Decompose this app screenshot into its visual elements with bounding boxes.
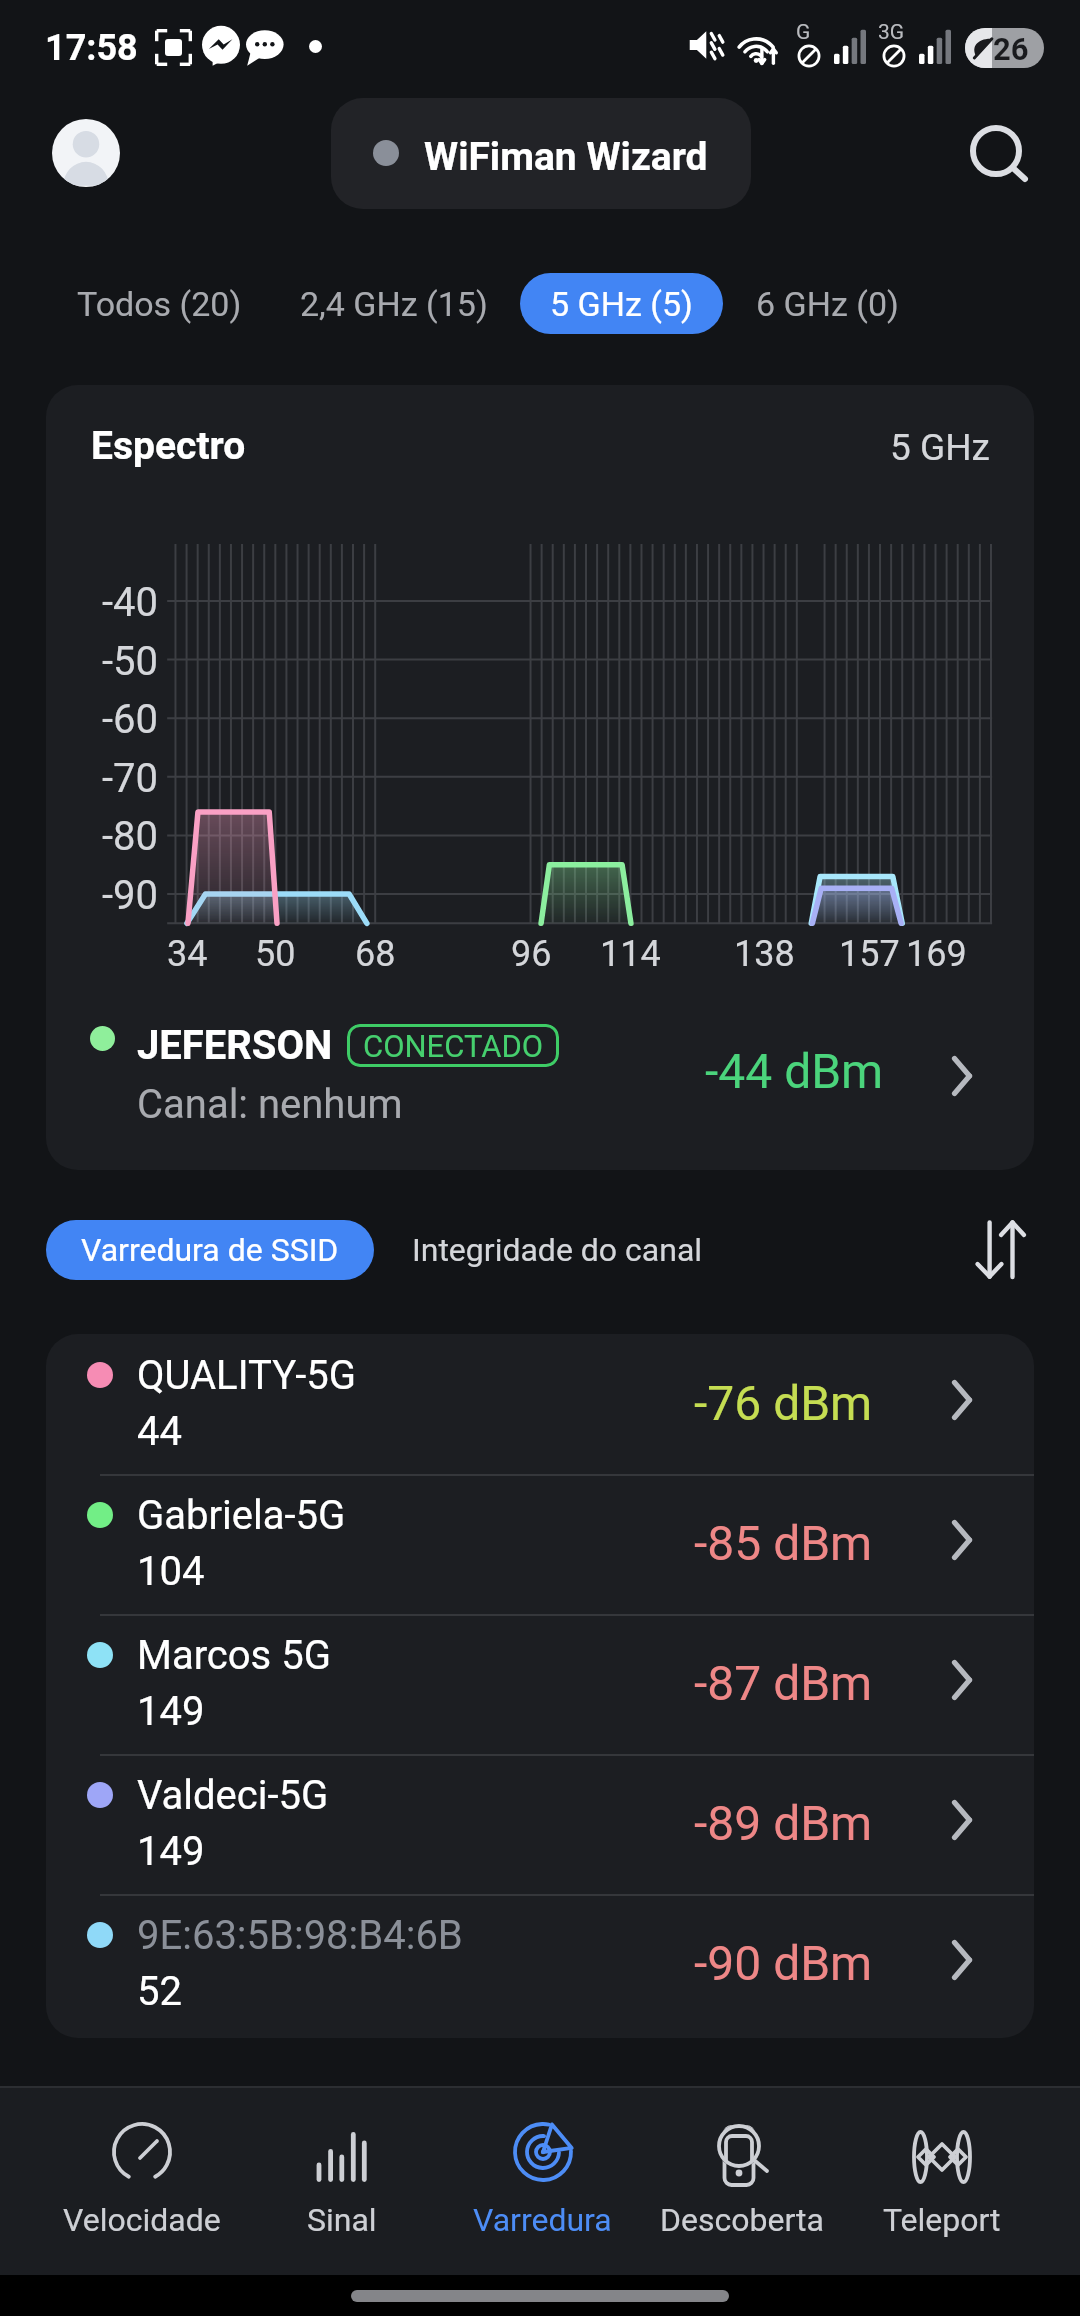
button[interactable]: 9E:63:5B:98:B4:6B <box>46 1894 1034 2034</box>
button[interactable]: Velocidade <box>42 2088 242 2275</box>
button[interactable]: Varredura <box>442 2088 642 2275</box>
staticText: 26 <box>993 31 1029 67</box>
button[interactable]: WiFiman Wizard <box>331 98 751 209</box>
staticText: Espectro <box>91 423 246 469</box>
staticText: WiFiman Wizard <box>424 134 708 180</box>
staticText: 34 <box>167 933 208 975</box>
staticText: 157 <box>839 933 900 975</box>
button[interactable]: Sort order <box>962 1212 1042 1274</box>
staticText: Teleport <box>883 2201 1001 2239</box>
staticText: QUALITY-5G <box>137 1352 356 1399</box>
button[interactable]: Search <box>956 113 1036 193</box>
staticText: 17:58 <box>45 27 138 69</box>
staticText: 52 <box>137 1968 182 2015</box>
staticText: Varredura <box>473 2201 612 2239</box>
staticText: Descoberta <box>660 2201 824 2239</box>
button[interactable]: Valdeci-5G <box>46 1754 1034 1894</box>
staticText: Sinal <box>307 2201 377 2239</box>
staticText: 114 <box>600 933 661 975</box>
button[interactable]: Gabriela-5G <box>46 1474 1034 1614</box>
staticText: Todos (20) <box>77 284 242 324</box>
staticText: Canal: nenhum <box>137 1081 403 1128</box>
button[interactable]: Integridade do canal <box>390 1220 725 1280</box>
staticText: 3G <box>878 20 905 45</box>
button[interactable]: Marcos 5G <box>46 1614 1034 1754</box>
button[interactable]: Account <box>52 119 120 187</box>
staticText: -40 <box>102 579 159 626</box>
staticText: 5 GHz <box>890 426 990 469</box>
staticText: 6 GHz (0) <box>756 284 899 324</box>
staticText: 96 <box>511 933 552 975</box>
staticText: -44 dBm <box>705 1043 884 1099</box>
staticText: -90 <box>102 872 159 919</box>
staticText: 50 <box>255 933 296 975</box>
staticText: Valdeci-5G <box>137 1772 329 1819</box>
staticText: 149 <box>137 1688 205 1735</box>
button[interactable]: Varredura de SSID <box>46 1220 374 1280</box>
staticText: -60 <box>102 696 159 743</box>
staticText: Velocidade <box>63 2201 221 2239</box>
button[interactable]: 5 GHz (5) <box>520 273 723 334</box>
button[interactable]: Teleport <box>842 2088 1042 2275</box>
button[interactable]: Todos (20) <box>49 273 270 334</box>
staticText: 104 <box>137 1548 205 1595</box>
staticText: Marcos 5G <box>137 1632 331 1679</box>
staticText: -80 <box>102 813 159 860</box>
staticText: -70 <box>102 755 159 802</box>
button[interactable]: QUALITY-5G <box>46 1334 1034 1474</box>
button[interactable]: JEFERSON <box>46 997 1034 1137</box>
staticText: Varredura de SSID <box>81 1231 339 1269</box>
button[interactable]: 6 GHz (0) <box>730 273 925 334</box>
staticText: Gabriela-5G <box>137 1492 346 1539</box>
staticText: -89 dBm <box>694 1795 873 1851</box>
button[interactable]: Descoberta <box>642 2088 842 2275</box>
button[interactable]: Sinal <box>242 2088 442 2275</box>
staticText: -50 <box>102 638 159 685</box>
staticText: Integridade do canal <box>412 1231 703 1269</box>
staticText: 68 <box>355 933 396 975</box>
staticText: -87 dBm <box>694 1655 873 1711</box>
staticText: -76 dBm <box>694 1375 873 1431</box>
staticText: CONECTADO <box>363 1028 544 1064</box>
staticText: 138 <box>734 933 795 975</box>
staticText: 169 <box>906 933 967 975</box>
staticText: 5 GHz (5) <box>550 284 693 324</box>
staticText: JEFERSON <box>137 1022 333 1069</box>
staticText: -85 dBm <box>694 1515 873 1571</box>
staticText: 44 <box>137 1408 182 1455</box>
staticText: G <box>796 20 811 45</box>
staticText: -90 dBm <box>694 1935 873 1991</box>
button[interactable]: 2,4 GHz (15) <box>272 273 516 334</box>
staticText: 9E:63:5B:98:B4:6B <box>137 1912 463 1959</box>
staticText: 149 <box>137 1828 205 1875</box>
staticText: 2,4 GHz (15) <box>300 284 488 324</box>
